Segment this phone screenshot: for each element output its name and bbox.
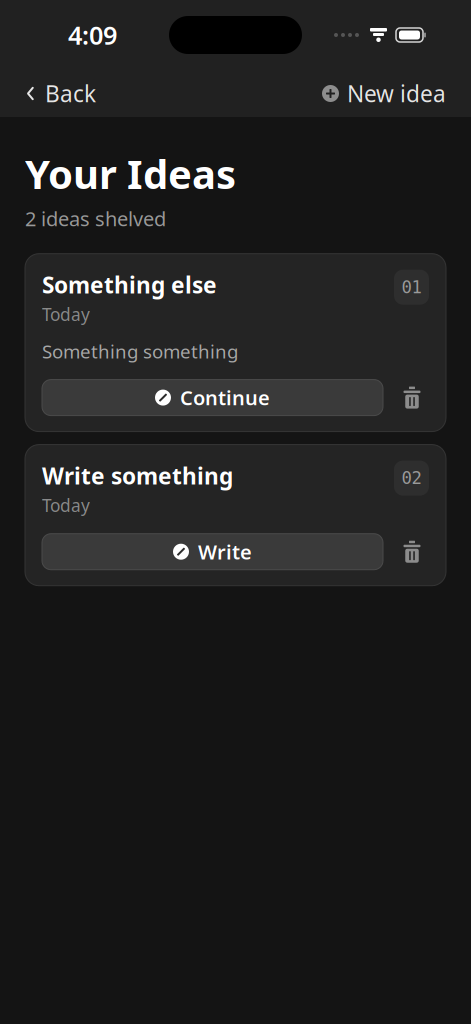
- staticText: Today: [42, 494, 90, 517]
- button[interactable]: Back: [0, 68, 121, 118]
- staticText: Back: [45, 78, 96, 108]
- staticText: 4:09: [68, 18, 117, 52]
- staticText: Continue: [180, 384, 270, 411]
- staticText: New idea: [347, 78, 446, 108]
- staticText: Today: [42, 303, 90, 326]
- staticText: Write: [198, 538, 252, 565]
- staticText: Write something: [42, 461, 233, 491]
- staticText: 01: [401, 277, 421, 297]
- button[interactable]: New idea: [297, 68, 471, 118]
- staticText: 02: [401, 468, 421, 488]
- staticText: Something something: [42, 339, 238, 364]
- staticText: 2 ideas shelved: [25, 205, 166, 232]
- staticText: Your Ideas: [25, 147, 236, 200]
- button[interactable]: Write: [42, 534, 383, 570]
- button[interactable]: Delete Something else: [395, 380, 429, 416]
- button[interactable]: Continue: [42, 380, 383, 416]
- button[interactable]: Delete Write something: [395, 534, 429, 570]
- staticText: Something else: [42, 270, 217, 300]
